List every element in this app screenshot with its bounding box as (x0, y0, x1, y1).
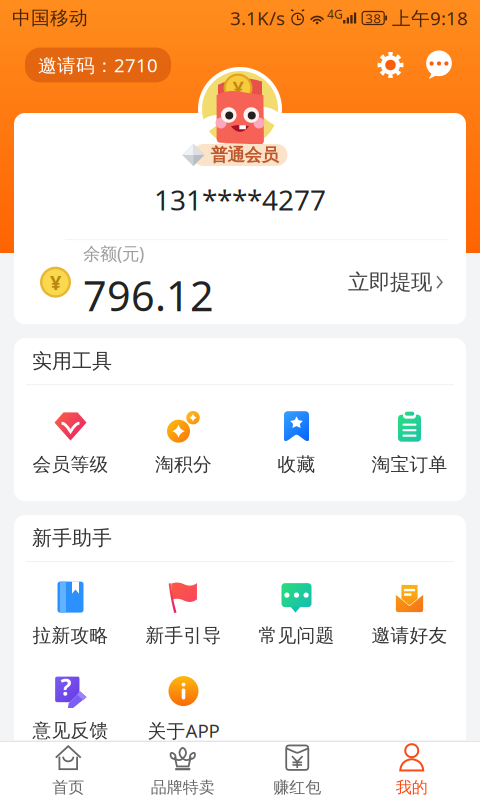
button[interactable]: 我的 (354, 742, 469, 800)
staticText: 淘积分 (155, 453, 212, 476)
staticText: 收藏 (277, 453, 315, 476)
staticText: ¥ (50, 269, 61, 295)
staticText: 品牌特卖 (151, 778, 215, 797)
button[interactable]: 邀请码：2710 (25, 48, 171, 82)
staticText: 3.1K/s (230, 6, 285, 30)
staticText: 上午9:18 (392, 6, 468, 30)
staticText: 4G (327, 6, 343, 22)
staticText: 中国移动 (12, 6, 88, 29)
button[interactable]: 赚红包 (240, 742, 354, 800)
button[interactable]: 品牌特卖 (125, 742, 240, 800)
staticText: 邀请好友 (371, 624, 447, 647)
staticText: 邀请码：2710 (38, 53, 158, 77)
button[interactable]: 关于APP (127, 673, 240, 743)
staticText: 131****4277 (154, 181, 326, 218)
staticText: 普通会员 (210, 144, 278, 166)
staticText: ? (60, 672, 71, 702)
button[interactable]: 新手引导 (127, 579, 240, 647)
button[interactable]: 立即提现 (334, 259, 443, 305)
staticText: 淘宝订单 (371, 453, 447, 476)
staticText: 关于APP (147, 718, 219, 743)
button[interactable]: 常见问题 (240, 579, 353, 647)
staticText: 38 (365, 9, 381, 27)
staticText: 赚红包 (273, 778, 321, 797)
staticText: 新手引导 (145, 624, 221, 647)
button[interactable]: 设置 (377, 51, 404, 78)
button[interactable]: 淘积分 (127, 408, 240, 476)
staticText: 首页 (52, 778, 84, 797)
staticText: 拉新攻略 (32, 624, 108, 647)
button[interactable]: ? (14, 674, 127, 742)
button[interactable]: 会员等级 (14, 408, 127, 476)
staticText: 立即提现 (348, 269, 432, 295)
staticText: 会员等级 (32, 453, 108, 476)
staticText: 新手助手 (32, 526, 112, 550)
button[interactable]: 首页 (11, 742, 125, 800)
button[interactable]: 淘宝订单 (353, 408, 466, 476)
staticText: ¥ (232, 75, 243, 101)
button[interactable]: 消息 (425, 51, 453, 79)
button[interactable]: 拉新攻略 (14, 579, 127, 647)
staticText: 我的 (396, 778, 428, 797)
staticText: 意见反馈 (32, 719, 108, 742)
staticText: 796.12 (83, 268, 214, 323)
button[interactable]: 收藏 (240, 408, 353, 476)
staticText: 余额(元) (83, 242, 144, 265)
staticText: 常见问题 (258, 624, 334, 647)
staticText: 实用工具 (32, 349, 112, 373)
button[interactable]: 邀请好友 (353, 579, 466, 647)
